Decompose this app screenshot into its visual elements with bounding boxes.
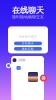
- staticText: 随时随地畅聊交友: [12, 14, 44, 19]
- staticText: 随机匹配: [22, 47, 34, 50]
- staticText: 在线聊天: [12, 5, 44, 15]
- button[interactable]: 随机匹配: [14, 47, 42, 51]
- staticText: 今天天气真好: [19, 59, 25, 61]
- button[interactable]: 开始聊天: [14, 42, 42, 45]
- staticText: 选择聊天模式: [19, 35, 37, 38]
- staticText: 开始聊天: [22, 42, 34, 45]
- button[interactable]: Chat: [6, 63, 11, 68]
- staticText: 是呀: [18, 67, 20, 69]
